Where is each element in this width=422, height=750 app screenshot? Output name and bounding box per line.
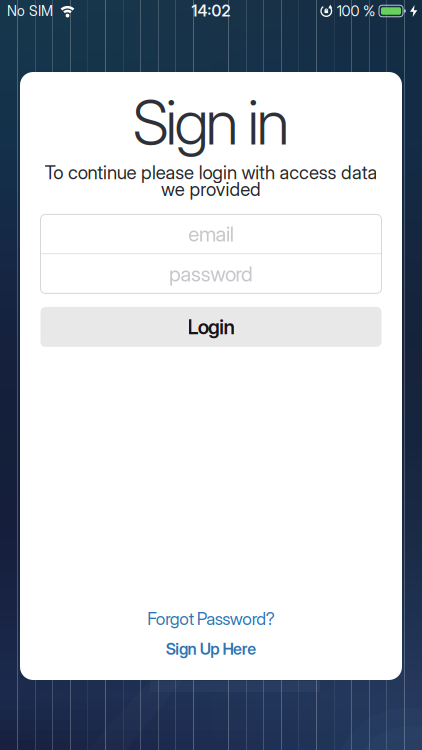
- staticText: Login: [188, 315, 234, 339]
- staticText: 14:02: [191, 2, 230, 20]
- button[interactable]: email: [40, 214, 381, 253]
- staticText: Sign in: [132, 85, 289, 159]
- staticText: password: [169, 261, 253, 286]
- staticText: No SIM: [7, 2, 53, 19]
- staticText: email: [188, 221, 234, 246]
- staticText: Forgot Password?: [147, 608, 275, 629]
- button[interactable]: password: [40, 254, 381, 293]
- staticText: Sign Up Here: [166, 639, 256, 658]
- staticText: To continue please login with access dat…: [44, 161, 377, 184]
- button[interactable]: Forgot Password?: [147, 608, 275, 629]
- button[interactable]: Login: [40, 307, 381, 347]
- button[interactable]: Sign Up Here: [166, 629, 256, 658]
- staticText: we provided: [161, 178, 261, 200]
- staticText: 100 %: [337, 2, 375, 20]
